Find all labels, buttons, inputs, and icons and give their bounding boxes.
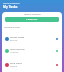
button[interactable]: 3 tasks due (5, 17, 59, 22)
staticText: 9:00 AM (10, 39, 18, 41)
staticText: Good morning (3, 1, 20, 4)
staticText: Team standup (10, 48, 25, 51)
staticText: Today's schedule (24, 13, 41, 16)
staticText: 11:30 AM (10, 51, 19, 53)
staticText: 3 tasks due (26, 18, 38, 21)
button[interactable]: Send report (2, 62, 62, 67)
staticText: Design review (10, 36, 25, 39)
staticText: Upcoming tasks (4, 26, 20, 29)
staticText: 4:00 PM (10, 65, 18, 67)
button[interactable]: Team standup (2, 48, 62, 53)
button[interactable]: Design review (2, 36, 62, 41)
staticText: My Tasks (3, 5, 18, 9)
staticText: Send report (10, 62, 23, 65)
